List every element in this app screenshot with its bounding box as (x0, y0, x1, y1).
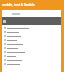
button[interactable] (2, 26, 61, 30)
button[interactable] (2, 46, 61, 50)
button[interactable] (2, 54, 61, 58)
staticText: mobile, text & flexible (2, 3, 35, 7)
button[interactable] (2, 30, 61, 34)
button[interactable] (2, 34, 61, 38)
button[interactable] (2, 62, 61, 66)
button[interactable] (2, 58, 61, 62)
button[interactable] (2, 50, 61, 54)
button[interactable] (2, 38, 61, 42)
button[interactable] (2, 42, 61, 46)
